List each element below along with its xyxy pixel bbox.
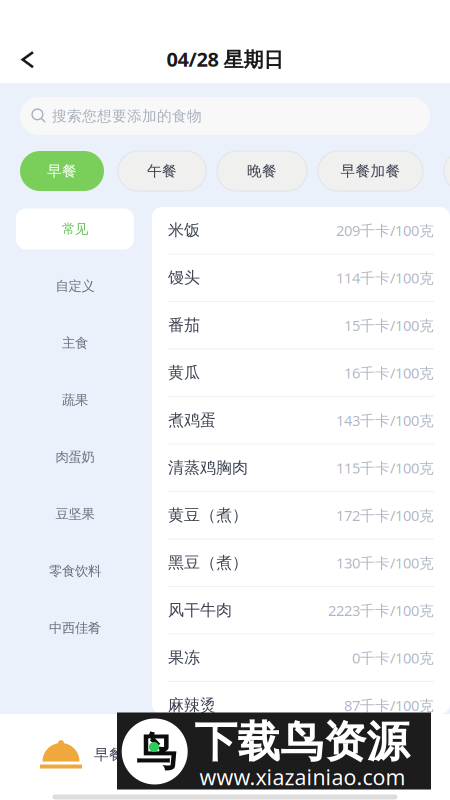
staticText: 黑豆（煮） [168, 553, 248, 573]
staticText: 番茄 [168, 315, 200, 335]
staticText: 115千卡/100克 [336, 458, 434, 477]
staticText: 早餐加餐 [340, 162, 400, 180]
button[interactable]: 豆坚果 [16, 493, 134, 534]
staticText: 搜索您想要添加的食物 [52, 107, 202, 125]
staticText: 下载鸟资源 [194, 716, 409, 768]
staticText: 零食饮料 [49, 563, 101, 579]
staticText: 午餐 [147, 162, 177, 180]
staticText: 143千卡/100克 [336, 410, 434, 430]
staticText: 清蒸鸡胸肉 [168, 458, 248, 478]
staticText: 114千卡/100克 [336, 268, 434, 287]
button[interactable]: 肉蛋奶 [16, 436, 134, 477]
staticText: 鸟 [136, 727, 176, 776]
staticText: 15千卡/100克 [344, 315, 434, 335]
staticText: 0千卡/100克 [352, 648, 434, 667]
staticText: 早餐 [47, 162, 77, 180]
button[interactable]: 常见 [16, 208, 134, 249]
button[interactable]: 返回 [6, 38, 50, 82]
button[interactable]: 零食饮料 [16, 550, 134, 591]
button[interactable]: 煮鸡蛋 [152, 397, 450, 444]
button[interactable]: 黑豆（煮） [152, 539, 450, 587]
staticText: 172千卡/100克 [336, 505, 434, 525]
staticText: 87千卡/100克 [344, 695, 434, 715]
staticText: 风干牛肉 [168, 600, 232, 620]
button[interactable]: 蔬果 [16, 379, 134, 420]
staticText: 黄豆（煮） [168, 505, 248, 525]
staticText: 果冻 [168, 648, 200, 668]
staticText: 04/28 星期日 [166, 46, 283, 72]
staticText: 米饭 [168, 220, 200, 240]
button[interactable]: 午餐 [118, 151, 206, 191]
button[interactable]: 黄瓜 [152, 349, 450, 397]
staticText: 早餐 0千卡 [94, 744, 166, 764]
button[interactable]: 果冻 [152, 634, 450, 682]
staticText: 209千卡/100克 [336, 220, 434, 240]
button[interactable]: 麻辣烫 [152, 682, 450, 729]
staticText: 肉蛋奶 [55, 449, 94, 465]
button[interactable]: 主食 [16, 322, 134, 363]
staticText: 常见 [62, 221, 88, 237]
staticText: 馒头 [168, 268, 200, 288]
button[interactable]: 晚餐 [217, 151, 307, 191]
button[interactable]: 自定义 [16, 265, 134, 306]
staticText: 豆坚果 [55, 506, 94, 522]
staticText: 晚餐 [247, 162, 277, 180]
staticText: 麻辣烫 [168, 695, 216, 715]
button[interactable]: 馒头 [152, 254, 450, 302]
staticText: 2223千卡/100克 [328, 600, 434, 620]
button[interactable]: 番茄 [152, 302, 450, 349]
staticText: www.xiazainiao.com [199, 763, 405, 791]
staticText: 130千卡/100克 [336, 553, 434, 572]
button[interactable]: 午餐加餐 [444, 151, 450, 191]
button[interactable]: 风干牛肉 [152, 587, 450, 634]
staticText: 煮鸡蛋 [168, 410, 216, 430]
staticText: 黄瓜 [168, 363, 200, 383]
button[interactable]: 中西佳肴 [16, 607, 134, 648]
button[interactable]: 早餐 [20, 151, 104, 191]
button[interactable]: 清蒸鸡胸肉 [152, 444, 450, 492]
staticText: 主食 [62, 335, 88, 351]
button[interactable]: 黄豆（煮） [152, 492, 450, 539]
staticText: 16千卡/100克 [344, 363, 434, 382]
staticText: 自定义 [55, 278, 94, 294]
button[interactable]: 米饭 [152, 207, 450, 254]
staticText: 蔬果 [62, 392, 88, 408]
button[interactable]: 早餐加餐 [318, 151, 423, 191]
staticText: 中西佳肴 [49, 620, 101, 636]
